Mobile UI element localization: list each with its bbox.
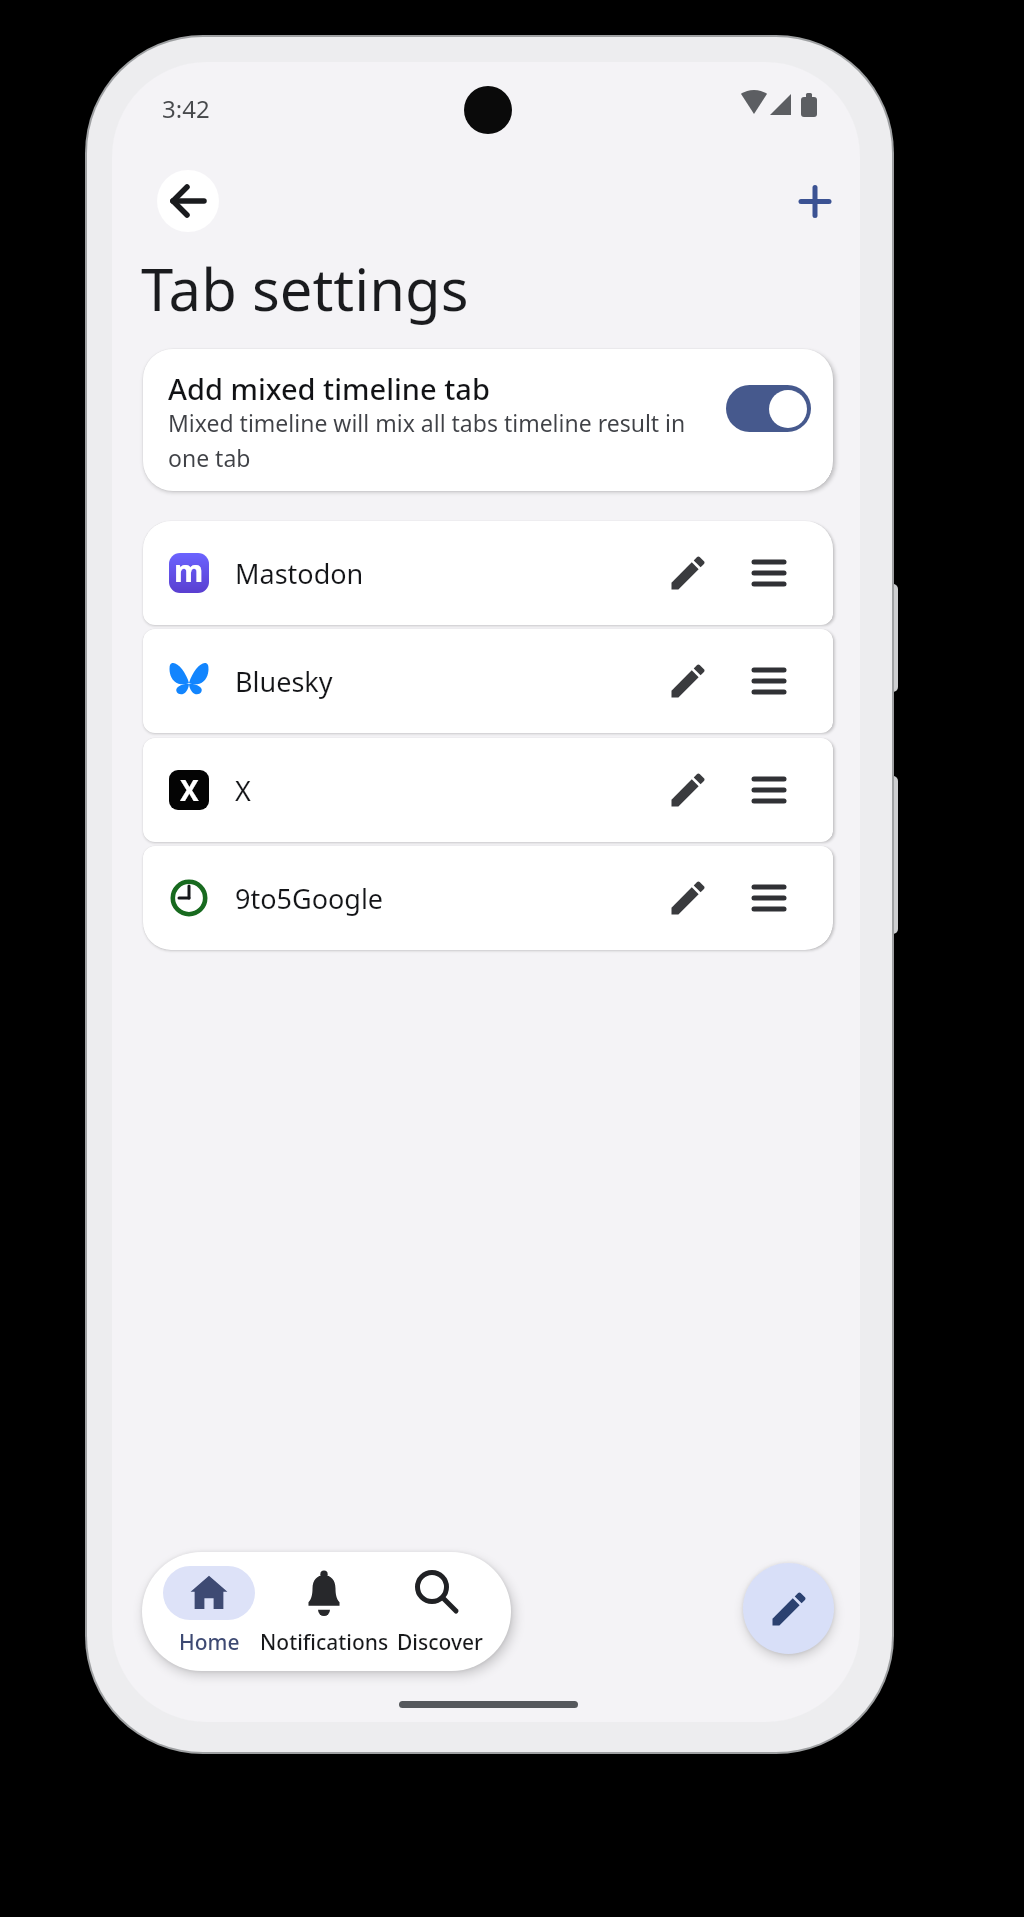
staticText: Bluesky xyxy=(235,663,333,700)
button[interactable]: 9to5Google xyxy=(143,846,833,950)
staticText: Discover xyxy=(397,1628,483,1657)
button[interactable] xyxy=(791,177,839,225)
button[interactable]: Bluesky xyxy=(143,629,833,733)
staticText: Notifications xyxy=(260,1628,389,1657)
button[interactable] xyxy=(272,1566,376,1620)
staticText: 9to5Google xyxy=(235,880,384,917)
button[interactable] xyxy=(743,1563,834,1654)
staticText: Tab settings xyxy=(141,249,469,328)
staticText: Home xyxy=(179,1628,240,1657)
button[interactable] xyxy=(157,170,219,232)
staticText: m xyxy=(174,553,204,590)
staticText: Mixed timeline will mix all tabs timelin… xyxy=(168,407,686,474)
staticText: X xyxy=(180,771,199,809)
staticText: 3:42 xyxy=(162,92,210,125)
staticText: X xyxy=(235,772,251,809)
button[interactable]: m xyxy=(143,521,833,625)
staticText: Add mixed timeline tab xyxy=(168,369,490,408)
button[interactable] xyxy=(392,1566,484,1620)
button[interactable] xyxy=(726,385,811,432)
staticText: Mastodon xyxy=(235,555,364,592)
button[interactable] xyxy=(163,1566,255,1620)
button[interactable]: X xyxy=(143,738,833,842)
